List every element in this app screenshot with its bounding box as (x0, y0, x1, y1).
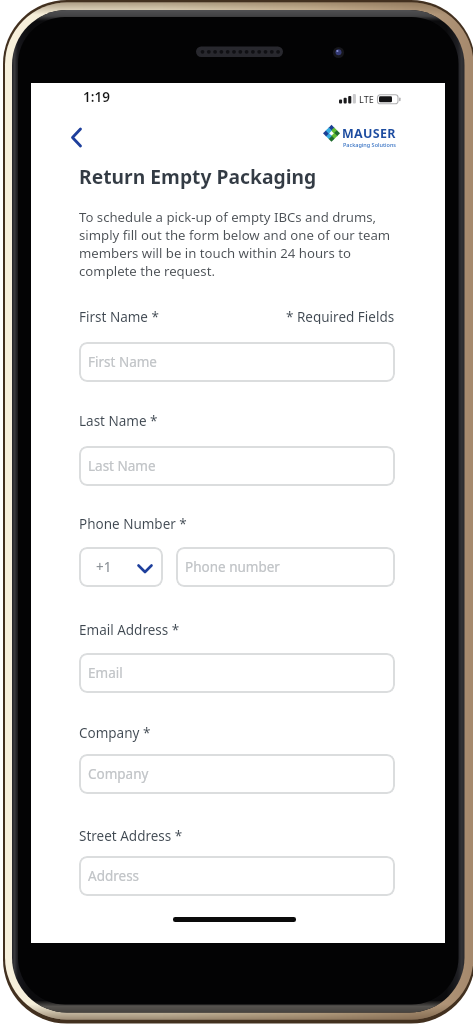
button[interactable]: Company (79, 754, 395, 794)
staticText: First Name * (79, 308, 159, 326)
staticText: Return Empty Packaging (79, 163, 317, 189)
staticText: Phone Number * (79, 515, 187, 533)
staticText: Phone number (185, 558, 280, 576)
staticText: Company (88, 765, 149, 783)
staticText: 1:19 (83, 88, 110, 106)
staticText: Address (88, 867, 140, 885)
staticText: Company * (79, 724, 151, 742)
button[interactable] (65, 123, 89, 151)
staticText: Last Name (88, 457, 156, 475)
button[interactable]: +1 (79, 547, 163, 587)
staticText: LTE (359, 93, 374, 105)
staticText: Email Address * (79, 621, 180, 639)
staticText: Email (88, 664, 123, 682)
staticText: * Required Fields (286, 308, 395, 324)
button[interactable]: Email (79, 653, 395, 693)
staticText: Last Name * (79, 412, 158, 430)
button[interactable]: Address (79, 856, 395, 896)
staticText: Packaging Solutions (343, 141, 396, 148)
button[interactable]: Last Name (79, 446, 395, 486)
button[interactable]: Phone number (176, 547, 395, 587)
staticText: To schedule a pick-up of empty IBCs and … (79, 208, 391, 280)
staticText: +1 (96, 558, 112, 576)
staticText: Street Address * (79, 827, 183, 845)
staticText: First Name (88, 353, 157, 371)
button[interactable]: First Name (79, 342, 395, 382)
staticText: MAUSER (342, 125, 396, 142)
